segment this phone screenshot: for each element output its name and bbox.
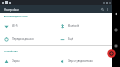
button[interactable]: Wi-Fi: [0, 20, 56, 33]
button[interactable]: Ещё: [56, 33, 112, 45]
button[interactable]: Передача данных: [0, 33, 56, 45]
staticText: Bluetooth: [68, 25, 80, 28]
staticText: Экран: [12, 60, 20, 63]
staticText: Беспроводные сети: [4, 15, 28, 18]
button[interactable]: Home: [113, 27, 119, 33]
button[interactable]: Back: [113, 11, 119, 17]
button[interactable]: Bluetooth: [56, 20, 112, 33]
button[interactable]: Recent apps: [113, 43, 119, 49]
staticText: Wi-Fi: [12, 25, 18, 28]
staticText: Передача данных: [12, 38, 34, 41]
button[interactable]: More options: [105, 7, 110, 12]
staticText: Устройство: [4, 50, 18, 53]
button[interactable]: Search: [100, 7, 105, 12]
button[interactable]: Экран: [0, 56, 56, 67]
staticText: Ещё: [68, 38, 74, 41]
staticText: Настройки: [4, 8, 19, 11]
staticText: Звук и уведомления: [68, 60, 93, 63]
button[interactable]: Звук и уведомления: [56, 56, 112, 67]
